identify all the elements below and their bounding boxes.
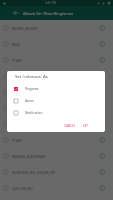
staticText: HANJI_ZOE [12,122,99,127]
staticText: LEVI_SQUAD [12,186,99,191]
button[interactable]: HANJI_ZOE [0,116,113,132]
button[interactable]: TITAN [0,132,113,148]
button[interactable]: ERWIN_SMITH [0,84,113,100]
staticText: SHINGEKI_NO_KYOJIN_OP [12,170,99,175]
staticText: ARMIN_ARLERT [12,26,99,31]
button[interactable]: Ringtone [7,83,105,95]
staticText: MIKASA_ACKERMAN [12,154,99,159]
staticText: Set 'colossus' As [15,73,48,79]
staticText: EREN_JAEGER [12,74,99,79]
button[interactable]: Navigate up [12,9,20,17]
staticText: SET [83,124,89,128]
button[interactable]: FEMALE_TITAN [0,100,113,116]
staticText: 3:49 PM [45,1,57,5]
button[interactable]: SHINGEKI_NO_KYOJIN_OP [0,164,113,180]
staticText: ERWIN_SMITH [12,90,99,95]
button[interactable]: TITAN [0,52,113,68]
staticText: Ringtone [25,87,39,91]
button[interactable]: Alarm [7,95,105,107]
staticText: TITAN [12,138,99,143]
button[interactable]: BEAT [0,36,113,52]
staticText: Notification [25,111,43,115]
button[interactable]: EREN_JAEGER [0,68,113,84]
staticText: Attack On Titan Ringtones [23,11,73,16]
staticText: Alarm [25,99,34,103]
staticText: CANCEL [64,124,76,128]
button[interactable]: MIKASA_ACKERMAN [0,148,113,164]
button[interactable]: ARMIN_ARLERT [0,20,113,36]
button[interactable]: Notification [7,107,105,119]
button[interactable]: CANCEL [62,122,78,130]
staticText: FEMALE_TITAN [12,106,99,111]
button[interactable]: LEVI_SQUAD [0,180,113,196]
staticText: TITAN [12,58,99,63]
staticText: BEAT [12,42,99,47]
button[interactable]: SET [81,122,91,130]
